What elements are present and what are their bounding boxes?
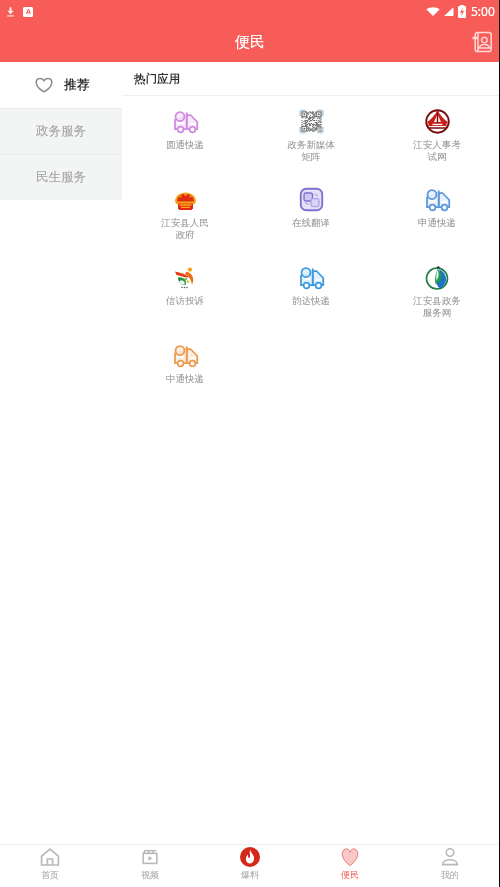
staticText: 热门应用 [134, 72, 180, 86]
button[interactable]: 爆料 [200, 845, 300, 887]
button[interactable]: 申通快递 [374, 174, 500, 252]
staticText: 视频 [141, 869, 159, 880]
staticText: 江安人事考 试网 [413, 139, 461, 162]
staticText: A [26, 7, 31, 17]
button[interactable]: 韵达快递 [248, 252, 374, 330]
staticText: 江安县政务 服务网 [413, 295, 461, 318]
button[interactable]: 江安人事考 试网 [374, 96, 500, 174]
staticText: 申通快递 [418, 217, 456, 229]
button[interactable]: 江安县政务 服务网 [374, 252, 500, 330]
button[interactable]: 视频 [100, 845, 200, 887]
staticText: 爆料 [241, 869, 259, 880]
button[interactable]: 圆通快递 [122, 96, 248, 174]
button[interactable]: Contacts [471, 31, 493, 53]
button[interactable]: 政务新媒体 矩阵 [248, 96, 374, 174]
staticText: 便民 [341, 869, 359, 880]
staticText: 政务服务 [36, 123, 86, 139]
staticText: 江安县人民 政府 [161, 217, 209, 240]
staticText: 5:00 [471, 3, 495, 19]
staticText: 信访投诉 [166, 295, 204, 307]
staticText: 便民 [235, 33, 265, 52]
staticText: 圆通快递 [166, 139, 204, 151]
button[interactable]: 我的 [400, 845, 500, 887]
staticText: 首页 [41, 869, 59, 880]
staticText: 中通快递 [166, 373, 204, 385]
staticText: 民生服务 [36, 169, 86, 185]
button[interactable]: 民生服务 [0, 154, 122, 200]
button[interactable]: 江安县人民 政府 [122, 174, 248, 252]
button[interactable]: 政务服务 [0, 108, 122, 154]
staticText: 推荐 [64, 77, 89, 93]
button[interactable]: 中通快递 [122, 330, 248, 408]
staticText: 韵达快递 [292, 295, 330, 307]
button[interactable]: 推荐 [0, 62, 122, 108]
button[interactable]: 在线翻译 [248, 174, 374, 252]
staticText: 我的 [441, 869, 459, 880]
button[interactable]: 首页 [0, 845, 100, 887]
button[interactable]: 信访投诉 [122, 252, 248, 330]
staticText: 政务新媒体 矩阵 [287, 139, 335, 162]
button[interactable]: 便民 [300, 845, 400, 887]
staticText: 在线翻译 [292, 217, 330, 229]
